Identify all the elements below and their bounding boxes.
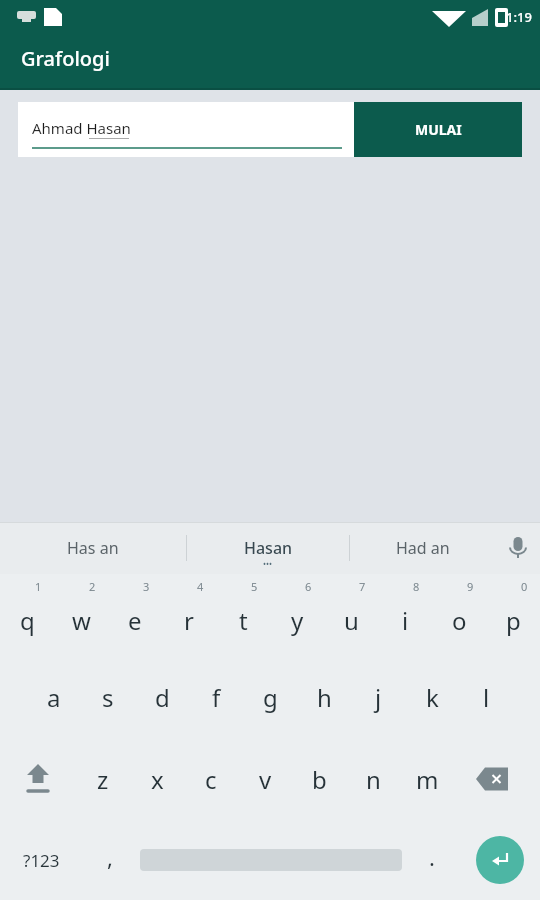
staticText: Has an: [67, 537, 119, 559]
button[interactable]: a: [27, 656, 81, 738]
button[interactable]: c: [184, 738, 238, 820]
staticText: j: [375, 681, 382, 714]
staticText: Ahmad Hasan: [32, 118, 131, 138]
button[interactable]: ?123: [0, 820, 82, 900]
staticText: 9: [467, 579, 474, 594]
staticText: 0: [521, 579, 528, 594]
staticText: f: [212, 681, 221, 714]
staticText: d: [155, 681, 170, 714]
button[interactable]: v: [238, 738, 292, 820]
staticText: w: [72, 604, 91, 637]
staticText: 8: [413, 579, 420, 594]
staticText: p: [506, 604, 521, 637]
button[interactable]: 6: [270, 574, 324, 656]
staticText: 7: [359, 579, 366, 594]
button[interactable]: 1: [0, 574, 54, 656]
button[interactable]: b: [292, 738, 346, 820]
staticText: s: [102, 681, 114, 714]
button[interactable]: .: [404, 820, 460, 900]
staticText: MULAI: [415, 120, 462, 139]
staticText: e: [128, 604, 142, 637]
button[interactable]: z: [76, 738, 130, 820]
staticText: 6: [305, 579, 312, 594]
button[interactable]: l: [459, 656, 513, 738]
button[interactable]: ,: [82, 820, 138, 900]
staticText: 2: [89, 579, 96, 594]
button[interactable]: Backspace: [454, 738, 530, 820]
button[interactable]: 0: [486, 574, 540, 656]
staticText: .: [429, 842, 435, 872]
staticText: 4: [197, 579, 204, 594]
button[interactable]: Has an: [0, 522, 186, 574]
staticText: u: [344, 604, 359, 637]
staticText: h: [317, 681, 332, 714]
button[interactable]: Enter: [460, 820, 540, 900]
button[interactable]: g: [243, 656, 297, 738]
button[interactable]: Ahmad Hasan: [18, 102, 354, 157]
button[interactable]: s: [81, 656, 135, 738]
button[interactable]: MULAI: [354, 102, 522, 157]
staticText: b: [312, 763, 327, 796]
staticText: Hasan: [244, 537, 293, 559]
staticText: v: [259, 763, 272, 796]
staticText: z: [97, 763, 109, 796]
staticText: ?123: [23, 849, 60, 872]
staticText: i: [402, 604, 409, 637]
staticText: 1:19: [506, 8, 532, 26]
staticText: Grafologi: [21, 45, 110, 72]
staticText: ,: [107, 842, 113, 872]
button[interactable]: 7: [324, 574, 378, 656]
staticText: 1: [35, 579, 42, 594]
staticText: m: [416, 763, 439, 796]
staticText: c: [205, 763, 217, 796]
button[interactable]: h: [297, 656, 351, 738]
button[interactable]: n: [346, 738, 400, 820]
staticText: t: [239, 604, 248, 637]
button[interactable]: 8: [378, 574, 432, 656]
button[interactable]: j: [351, 656, 405, 738]
staticText: 5: [251, 579, 258, 594]
button[interactable]: Voice input: [496, 522, 540, 574]
staticText: a: [47, 681, 61, 714]
button[interactable]: 3: [108, 574, 162, 656]
button[interactable]: [138, 820, 404, 900]
staticText: o: [452, 604, 467, 637]
button[interactable]: 5: [216, 574, 270, 656]
staticText: k: [426, 681, 439, 714]
staticText: 3: [143, 579, 150, 594]
staticText: y: [291, 604, 304, 637]
staticText: Had an: [396, 537, 450, 559]
staticText: q: [20, 604, 35, 637]
staticText: r: [184, 604, 194, 637]
button[interactable]: f: [189, 656, 243, 738]
button[interactable]: x: [130, 738, 184, 820]
button[interactable]: 2: [54, 574, 108, 656]
button[interactable]: 9: [432, 574, 486, 656]
staticText: •••: [263, 558, 273, 569]
button[interactable]: 4: [162, 574, 216, 656]
button[interactable]: Had an: [350, 522, 496, 574]
button[interactable]: m: [400, 738, 454, 820]
staticText: l: [483, 681, 490, 714]
button[interactable]: k: [405, 656, 459, 738]
button[interactable]: Shift: [0, 738, 76, 820]
staticText: n: [366, 763, 381, 796]
button[interactable]: d: [135, 656, 189, 738]
staticText: g: [263, 681, 278, 714]
button[interactable]: Hasan: [187, 522, 349, 574]
staticText: x: [151, 763, 164, 796]
